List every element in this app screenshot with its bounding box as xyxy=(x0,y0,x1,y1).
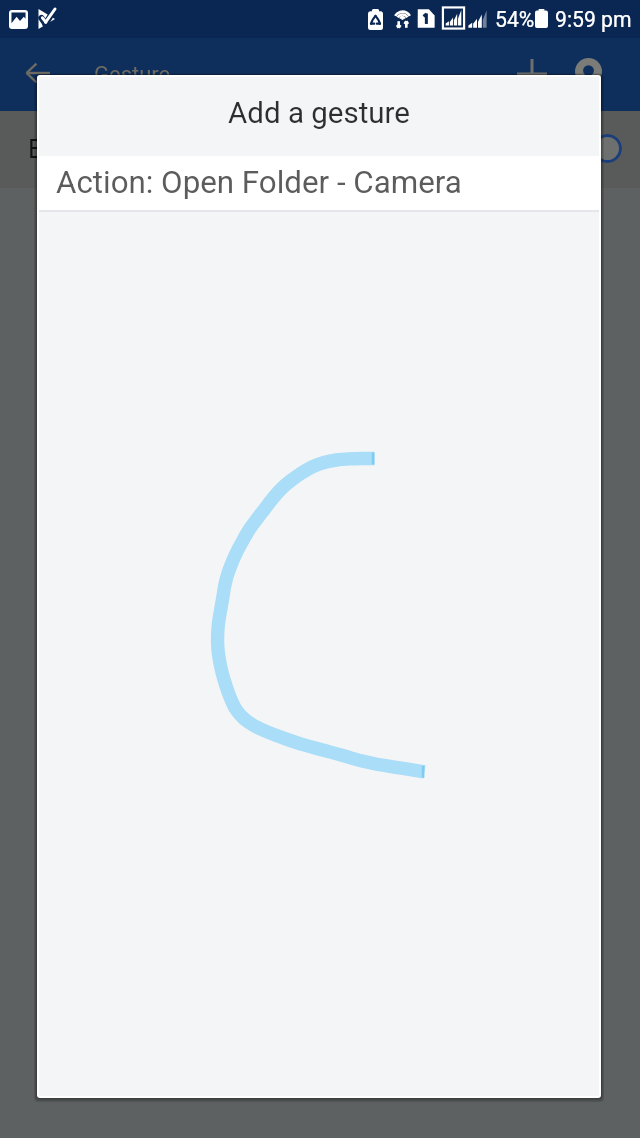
button[interactable]: Navigate up xyxy=(20,55,56,91)
button[interactable]: Add gesture xyxy=(512,54,552,94)
staticText: Action: Open Folder - Camera xyxy=(56,164,462,201)
button[interactable]: Action: Open Folder - Camera xyxy=(39,156,599,210)
button[interactable]: Gesture drawing area xyxy=(39,212,599,1096)
button[interactable]: Record gesture xyxy=(593,134,622,163)
staticText: Gesture xyxy=(94,62,171,88)
staticText: 9:59 pm xyxy=(555,7,632,32)
staticText: Edit xyxy=(28,134,73,164)
staticText: 54% xyxy=(495,7,535,32)
staticText: Add a gesture xyxy=(228,96,410,131)
button[interactable]: Account xyxy=(568,51,609,92)
